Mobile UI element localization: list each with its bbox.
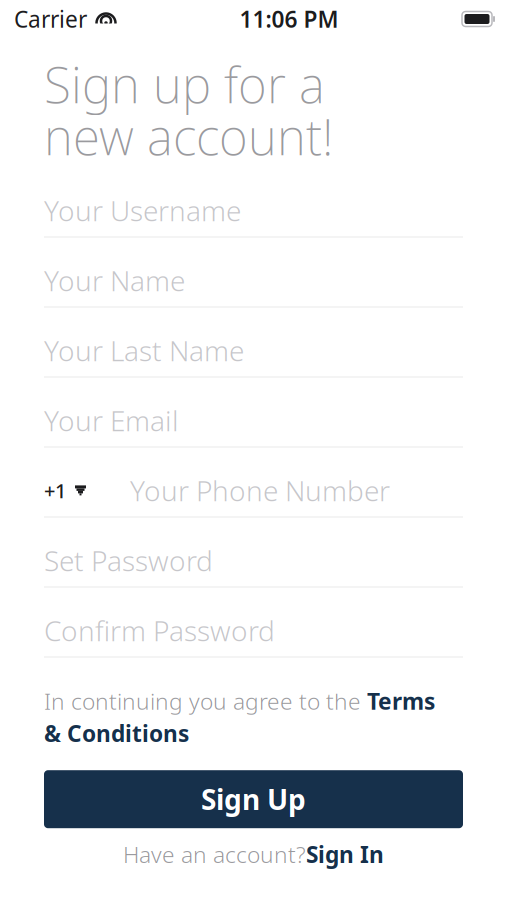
staticText: Confirm Password [44, 612, 275, 649]
staticText: Set Password [44, 542, 213, 579]
staticText: & Conditions [44, 718, 189, 748]
button[interactable]: Sign Up [44, 770, 463, 828]
staticText: new account! [44, 103, 333, 169]
staticText: In continuing you agree to the [44, 686, 367, 716]
staticText: Sign In [306, 839, 384, 869]
staticText: Your Phone Number [130, 472, 390, 509]
staticText: Your Last Name [44, 332, 244, 369]
staticText: Your Name [44, 262, 185, 299]
button[interactable]: Your Email [44, 386, 463, 456]
button[interactable]: Your Username [44, 176, 463, 246]
staticText: 11:06 PM [239, 4, 338, 34]
button[interactable]: In continuing you agree to the [44, 686, 463, 748]
button[interactable]: +1 [44, 456, 463, 526]
button[interactable]: Your Name [44, 246, 463, 316]
button[interactable]: Confirm Password [44, 596, 463, 666]
button[interactable]: Have an account? [123, 834, 384, 874]
staticText: Sign Up [201, 781, 306, 818]
staticText: Your Email [44, 402, 179, 439]
staticText: Sign up for a [44, 51, 325, 117]
staticText: Your Username [44, 192, 241, 229]
staticText: Carrier [14, 4, 87, 34]
staticText: +1 [44, 477, 66, 504]
staticText: Have an account? [123, 839, 306, 869]
button[interactable]: Set Password [44, 526, 463, 596]
staticText: Terms [367, 686, 435, 716]
button[interactable]: Your Last Name [44, 316, 463, 386]
